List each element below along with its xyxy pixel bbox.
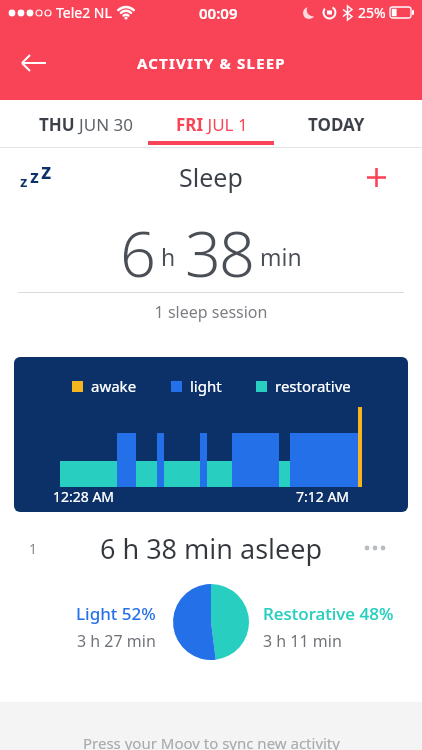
staticText: FRI JUL 1	[176, 113, 248, 136]
staticText: 6 h 38 min asleep	[100, 530, 323, 567]
staticText: z	[41, 157, 52, 186]
staticText: Restorative 48%	[263, 602, 394, 625]
staticText: z	[30, 164, 39, 189]
button[interactable]: awake	[14, 357, 408, 512]
staticText: z	[20, 171, 28, 191]
staticText: 1 sleep session	[0, 301, 422, 323]
staticText: THU JUN 30	[39, 113, 133, 136]
staticText: 38	[185, 210, 253, 285]
staticText: Tele2 NL	[56, 3, 112, 22]
staticText: 25%	[358, 3, 386, 22]
staticText: ACTIVITY & SLEEP	[137, 53, 286, 73]
staticText: light	[190, 376, 222, 396]
staticText: Sleep	[179, 160, 243, 194]
staticText: 3 h 27 min	[77, 630, 156, 652]
button[interactable]: 1	[0, 512, 422, 578]
staticText: h	[161, 241, 176, 272]
button[interactable]: THU JUN 30	[23, 100, 149, 148]
button[interactable]	[358, 159, 394, 195]
button[interactable]: TODAY	[274, 100, 399, 148]
staticText: restorative	[275, 376, 351, 396]
button[interactable]: FRI JUL 1	[149, 100, 274, 148]
button[interactable]	[14, 43, 54, 83]
staticText: min	[260, 241, 302, 272]
staticText: TODAY	[308, 113, 365, 136]
staticText: 1	[29, 539, 38, 558]
staticText: 00:09	[199, 3, 238, 23]
button[interactable]: Press your Moov to sync new activity	[0, 702, 422, 750]
staticText: 3 h 11 min	[263, 630, 342, 652]
staticText: Light 52%	[76, 602, 156, 625]
staticText: awake	[91, 376, 137, 396]
staticText: 12:28 AM	[53, 487, 115, 506]
staticText: Press your Moov to sync new activity	[83, 733, 340, 750]
staticText: 7:12 AM	[296, 487, 350, 506]
staticText: 6	[120, 210, 154, 285]
